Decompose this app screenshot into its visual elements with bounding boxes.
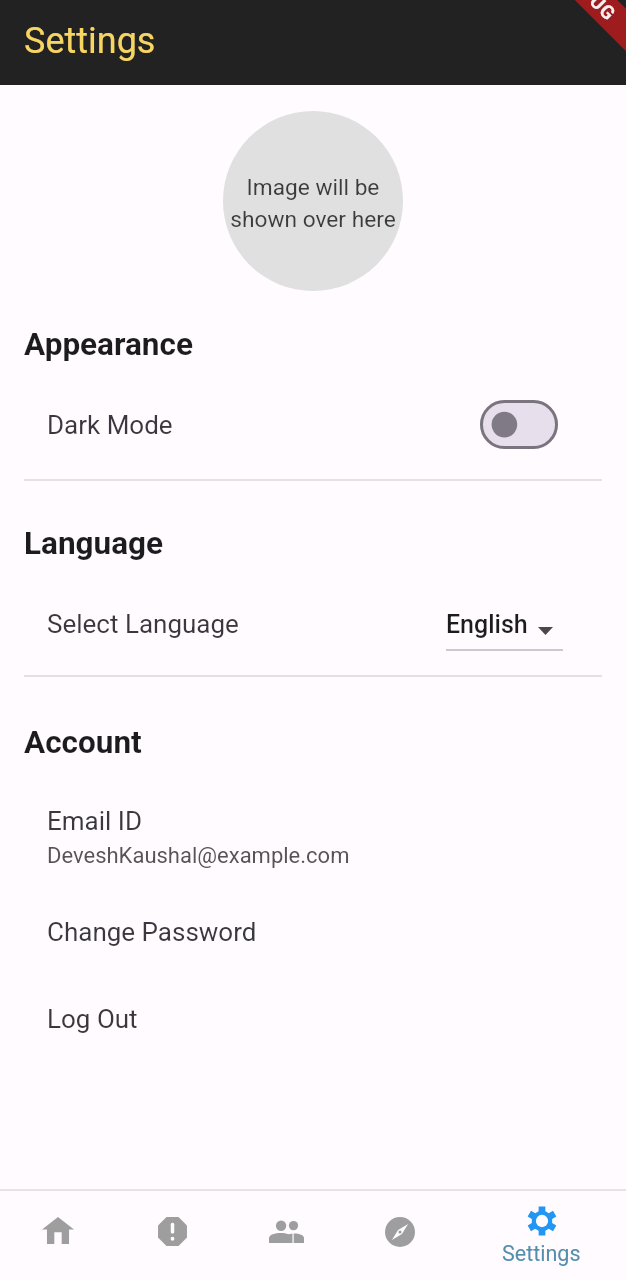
button[interactable]: People — [229, 1191, 343, 1280]
button[interactable]: Settings — [457, 1191, 626, 1280]
staticText: Appearance — [24, 326, 193, 363]
staticText: Settings — [502, 1241, 581, 1266]
staticText: DEBUG — [559, 0, 621, 25]
staticText: Select Language — [47, 609, 239, 639]
button[interactable]: Log Out — [0, 1004, 626, 1044]
button[interactable]: Explore — [343, 1191, 457, 1280]
button[interactable]: Report — [115, 1191, 229, 1280]
button[interactable]: Change Password — [0, 917, 626, 957]
staticText: Log Out — [47, 1004, 138, 1034]
button[interactable]: Select Language — [0, 609, 626, 653]
staticText: DeveshKaushal@example.com — [47, 843, 350, 869]
button[interactable]: Dark mode toggle — [480, 400, 558, 449]
staticText: Email ID — [47, 806, 142, 836]
button[interactable]: Home — [0, 1191, 115, 1280]
staticText: Account — [24, 724, 142, 761]
staticText: English — [446, 610, 528, 639]
staticText: Dark Mode — [47, 410, 173, 440]
staticText: Change Password — [47, 917, 257, 947]
button[interactable]: Dark Mode — [0, 400, 626, 449]
staticText: Language — [24, 525, 164, 562]
button[interactable]: Email ID — [0, 806, 626, 873]
staticText: Image will be shown over here — [230, 174, 396, 232]
staticText: Settings — [24, 20, 156, 62]
button[interactable]: English — [446, 610, 563, 651]
